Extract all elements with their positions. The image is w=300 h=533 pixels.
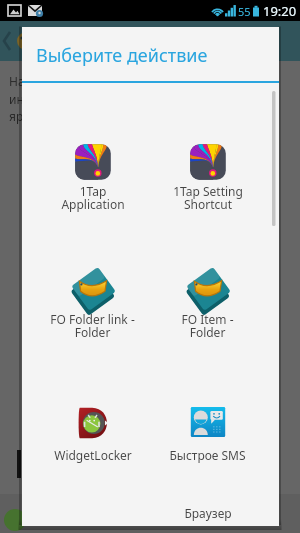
staticText: ярлыку — [9, 108, 52, 124]
staticText: FO Item - Folder — [181, 311, 234, 341]
button[interactable]: Быстрое SMS — [150, 389, 265, 509]
staticText: WidgetLocker — [54, 447, 132, 463]
staticText: FO Folder link - Folder — [50, 311, 135, 341]
staticText: 1Tap Setting Shortcut — [173, 183, 243, 213]
staticText: инструмент — [9, 91, 78, 107]
staticText: Быстрое SMS — [169, 447, 246, 463]
staticText: 55 — [238, 4, 251, 19]
button[interactable]: WidgetLocker — [35, 389, 150, 509]
button[interactable]: Браузер — [158, 505, 258, 523]
staticText: 19:20 — [263, 2, 297, 20]
button[interactable]: 1Tap Setting Shortcut — [150, 128, 265, 248]
staticText: Назначьте — [9, 73, 70, 89]
button[interactable]: FO Item - Folder — [150, 256, 265, 376]
staticText: Выберите действие — [36, 43, 208, 68]
button[interactable]: FO Folder link - Folder — [35, 256, 150, 376]
button[interactable]: 1Tap Application — [35, 128, 150, 248]
staticText: 1Tap Application — [61, 183, 125, 213]
staticText: Браузер — [184, 505, 232, 521]
